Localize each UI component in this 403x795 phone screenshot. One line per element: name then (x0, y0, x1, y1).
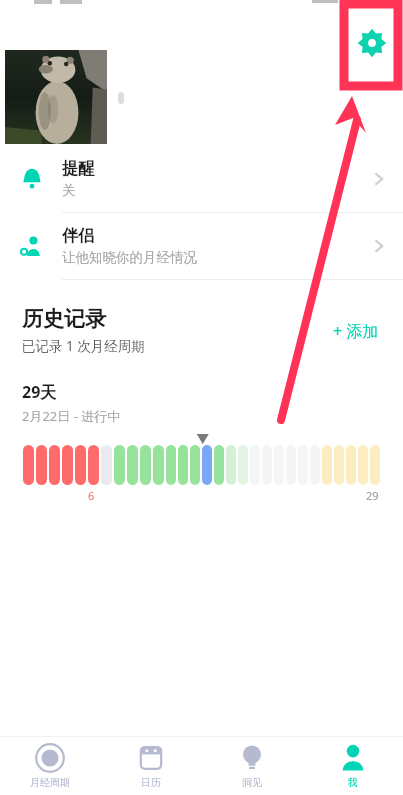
button[interactable]: 日历 (100, 737, 201, 795)
staticText: 29天 (22, 381, 57, 403)
button[interactable]: 我 (302, 737, 403, 795)
button[interactable]: + 添加 (327, 314, 385, 348)
staticText: 关 (62, 182, 76, 199)
staticText: 已记录 1 次月经周期 (22, 337, 145, 355)
staticText: 日历 (141, 776, 161, 789)
staticText: 6 (88, 488, 95, 503)
staticText: 让他知晓你的月经情况 (62, 249, 197, 266)
button[interactable]: 伴侣 (0, 213, 403, 279)
button[interactable]: 洞见 (201, 737, 302, 795)
staticText: 伴侣 (62, 226, 94, 246)
button[interactable]: Settings (355, 26, 389, 60)
button[interactable]: 提醒 (0, 146, 403, 212)
staticText: 29 (366, 488, 379, 503)
staticText: 月经周期 (30, 776, 70, 789)
staticText: 我 (348, 776, 358, 789)
staticText: 提醒 (62, 159, 94, 179)
button[interactable]: 月经周期 (0, 737, 100, 795)
staticText: 历史记录 (22, 306, 106, 332)
staticText: + 添加 (333, 320, 379, 342)
staticText: 洞见 (242, 776, 262, 789)
button[interactable]: 29天 (0, 381, 403, 505)
staticText: 2月22日 - 进行中 (22, 407, 121, 425)
